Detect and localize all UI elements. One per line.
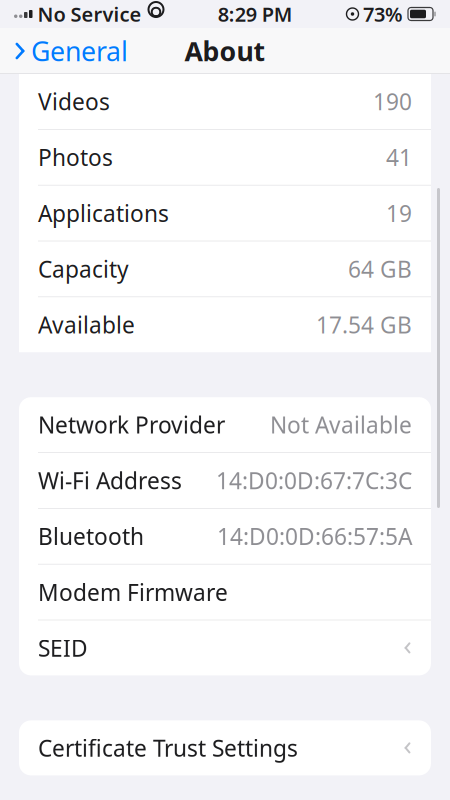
staticText: About — [184, 33, 265, 69]
button[interactable]: Certificate Trust Settings — [19, 720, 431, 775]
staticText: Network Provider — [38, 410, 225, 440]
button[interactable]: Network Provider — [19, 397, 431, 453]
staticText: 14:D0:0D:66:57:5A — [217, 521, 412, 551]
staticText: 190 — [373, 86, 412, 116]
button[interactable]: Photos — [19, 130, 431, 186]
staticText: 17.54 GB — [316, 310, 412, 340]
staticText: SEID — [38, 633, 88, 663]
staticText: Videos — [38, 86, 110, 116]
staticText: 73% — [363, 1, 403, 27]
button[interactable]: Applications — [19, 186, 431, 241]
staticText: General — [31, 33, 128, 69]
staticText: 41 — [386, 142, 412, 172]
staticText: Wi-Fi Address — [38, 465, 182, 495]
staticText: 64 GB — [348, 254, 412, 284]
button[interactable]: Wi-Fi Address — [19, 453, 431, 509]
staticText: Applications — [38, 198, 169, 228]
staticText: 19 — [386, 198, 412, 228]
button[interactable]: Videos — [19, 74, 431, 130]
staticText: Modem Firmware — [38, 577, 228, 607]
staticText: 14:D0:0D:67:7C:3C — [216, 465, 412, 495]
staticText: 8:29 PM — [218, 1, 293, 27]
staticText: Available — [38, 310, 135, 340]
staticText: No Service — [37, 1, 141, 27]
staticText: Photos — [38, 142, 113, 172]
button[interactable]: General — [6, 27, 136, 75]
staticText: Not Available — [270, 410, 412, 440]
button[interactable]: SEID — [19, 620, 431, 675]
staticText: Bluetooth — [38, 521, 144, 551]
button[interactable]: Modem Firmware — [19, 565, 431, 620]
staticText: Certificate Trust Settings — [38, 733, 298, 763]
button[interactable]: Bluetooth — [19, 509, 431, 565]
button[interactable]: Capacity — [19, 241, 431, 297]
staticText: Capacity — [38, 254, 129, 284]
button[interactable]: Available — [19, 297, 431, 352]
